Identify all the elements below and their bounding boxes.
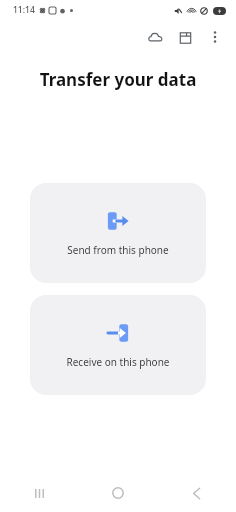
staticText: Receive on this phone [30,355,206,369]
button[interactable]: Home [78,474,157,512]
button[interactable]: Back [157,474,236,512]
staticText: Transfer your data [0,68,236,91]
button[interactable]: Receive on this phone [30,295,206,395]
button[interactable]: Send from this phone [30,183,206,283]
staticText: Send from this phone [30,243,206,257]
button[interactable]: Cloud backup [140,22,170,52]
staticText: 11:14 [13,4,35,16]
button[interactable]: Recent apps [0,474,78,512]
button[interactable]: Archive [170,22,200,52]
button[interactable]: More options [200,22,230,52]
